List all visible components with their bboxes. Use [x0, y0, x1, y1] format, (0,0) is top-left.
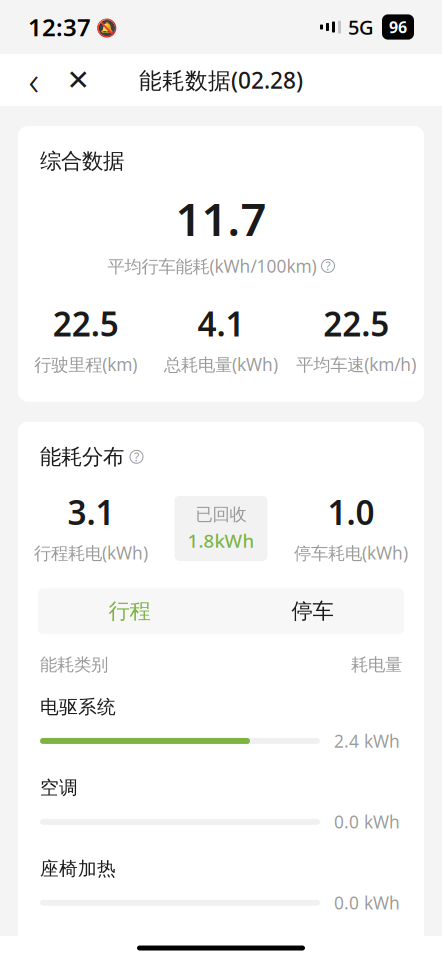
button[interactable]: 关闭 — [56, 58, 100, 102]
staticText: 5G — [348, 14, 374, 40]
staticText: 停车 — [291, 598, 333, 624]
staticText: 能耗数据(02.28) — [139, 65, 303, 95]
button[interactable]: 返回 — [12, 58, 56, 102]
staticText: 电驱系统 — [40, 695, 116, 718]
staticText: 行程 — [108, 598, 150, 624]
staticText: 1.0 — [327, 490, 374, 534]
staticText: 2.4 kWh — [334, 729, 400, 752]
staticText: 平均车速(km/h) — [296, 353, 416, 376]
staticText: 1.8kWh — [187, 528, 254, 553]
staticText: 0.0 kWh — [334, 810, 400, 833]
staticText: 22.5 — [53, 301, 119, 346]
staticText: 空调 — [40, 776, 78, 799]
button[interactable]: 行程 — [38, 588, 221, 634]
staticText: 行程耗电(kWh) — [34, 541, 148, 564]
staticText: 总耗电量(kWh) — [164, 353, 278, 376]
staticText: 行驶里程(km) — [34, 353, 137, 376]
staticText: 耗电量 — [351, 654, 402, 675]
staticText: 🔕 — [91, 15, 118, 38]
staticText: ✕ — [66, 64, 89, 96]
staticText: 96 — [389, 16, 407, 38]
staticText: 座椅加热 — [40, 857, 116, 880]
staticText: 能耗分布 — [40, 444, 124, 470]
staticText: 3.1 — [67, 490, 114, 534]
staticText: 能耗类别 — [40, 654, 108, 675]
staticText: 已回收 — [195, 504, 246, 525]
button[interactable]: 停车 — [221, 588, 404, 634]
staticText: 11.7 — [175, 188, 266, 248]
staticText: ? — [134, 449, 139, 465]
staticText: ? — [325, 258, 330, 274]
staticText: 12:37 — [28, 11, 91, 43]
staticText: 4.1 — [197, 301, 244, 346]
staticText: 综合数据 — [40, 148, 124, 174]
staticText: 0.0 kWh — [334, 891, 400, 914]
staticText: 停车耗电(kWh) — [294, 541, 408, 564]
staticText: ‹ — [28, 53, 39, 106]
staticText: 22.5 — [323, 301, 389, 346]
staticText: 平均行车能耗(kWh/100km) — [107, 254, 316, 277]
